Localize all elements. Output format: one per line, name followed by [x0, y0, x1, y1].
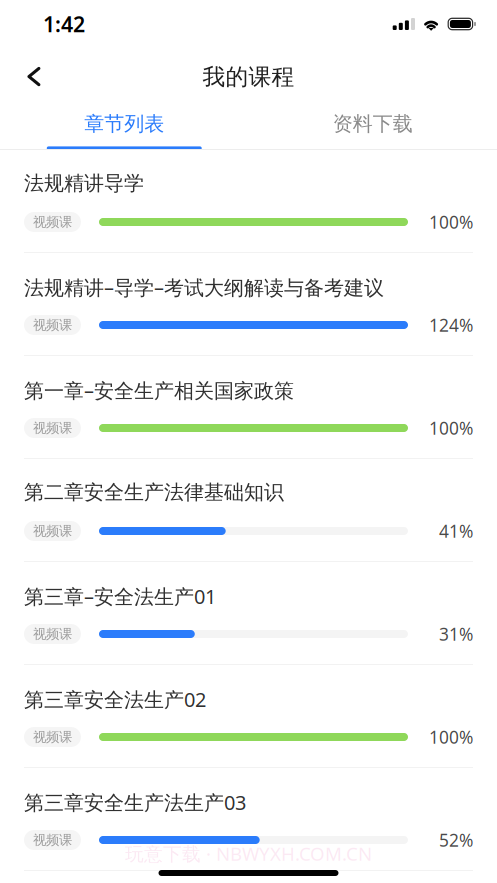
- button[interactable]: 资料下载: [248, 98, 497, 150]
- button[interactable]: 第二章安全生产法律基础知识: [0, 459, 497, 562]
- staticText: 第二章安全生产法律基础知识: [24, 480, 284, 505]
- button[interactable]: Back: [10, 47, 58, 98]
- staticText: 100%: [429, 416, 473, 439]
- staticText: 视频课: [33, 214, 72, 230]
- button[interactable]: 第三章–安全法生产01: [0, 562, 497, 665]
- staticText: 玩意下载 · NBWYXH.COM.CN: [125, 841, 372, 866]
- staticText: 100%: [429, 725, 473, 748]
- staticText: 100%: [429, 210, 473, 233]
- staticText: 我的课程: [202, 63, 294, 91]
- staticText: 视频课: [33, 317, 72, 333]
- staticText: 31%: [439, 622, 473, 645]
- staticText: 视频课: [33, 832, 72, 848]
- staticText: 41%: [439, 519, 473, 542]
- button[interactable]: 法规精讲导学: [0, 150, 497, 253]
- button[interactable]: 第三章安全法生产02: [0, 665, 497, 768]
- staticText: 第三章安全法生产02: [24, 686, 206, 713]
- staticText: 资料下载: [333, 111, 413, 136]
- staticText: 第三章安全生产法生产03: [24, 789, 246, 816]
- staticText: 第三章–安全法生产01: [24, 583, 216, 610]
- button[interactable]: 第一章–安全生产相关国家政策: [0, 356, 497, 459]
- staticText: 52%: [439, 828, 473, 851]
- button[interactable]: 第三章安全生产法生产03: [0, 768, 497, 871]
- button[interactable]: 法规精讲–导学–考试大纲解读与备考建议: [0, 253, 497, 356]
- staticText: 视频课: [33, 420, 72, 436]
- staticText: 视频课: [33, 626, 72, 642]
- staticText: 视频课: [33, 729, 72, 745]
- staticText: 视频课: [33, 523, 72, 539]
- staticText: 法规精讲–导学–考试大纲解读与备考建议: [24, 274, 384, 301]
- staticText: 124%: [429, 313, 473, 336]
- staticText: 第一章–安全生产相关国家政策: [24, 377, 294, 404]
- button[interactable]: 章节列表: [0, 98, 248, 150]
- staticText: 章节列表: [84, 111, 164, 136]
- staticText: 1:42: [43, 10, 85, 38]
- staticText: 法规精讲导学: [24, 171, 144, 196]
